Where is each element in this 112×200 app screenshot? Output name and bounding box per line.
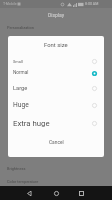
staticText: Cancel: [49, 140, 64, 146]
staticText: Personalization: [7, 25, 34, 30]
button[interactable]: Recents: [75, 187, 87, 199]
staticText: Color temperature: [7, 179, 39, 184]
button[interactable]: Huge: [8, 99, 104, 111]
button[interactable]: Normal: [8, 67, 104, 79]
staticText: Extra huge: [13, 119, 50, 128]
staticText: Large: [13, 85, 28, 92]
staticText: 8:00 AM: [85, 2, 99, 6]
button[interactable]: Large: [8, 82, 104, 94]
button[interactable]: Home: [50, 187, 62, 199]
button[interactable]: Color temperature: [0, 176, 112, 186]
staticText: T-Mobile: [3, 2, 17, 6]
button[interactable]: Extra huge: [8, 117, 104, 129]
staticText: Huge: [13, 101, 29, 109]
button[interactable]: Personalization: [0, 22, 112, 32]
button[interactable]: Small: [8, 55, 104, 67]
button[interactable]: Back: [23, 187, 35, 199]
staticText: Font size: [44, 42, 68, 49]
button[interactable]: Brightness: [0, 163, 112, 173]
staticText: Small: [13, 59, 23, 64]
staticText: Brightness: [7, 166, 26, 171]
staticText: Display: [48, 12, 65, 18]
button[interactable]: Cancel: [8, 135, 104, 151]
staticText: Normal: [13, 70, 29, 76]
